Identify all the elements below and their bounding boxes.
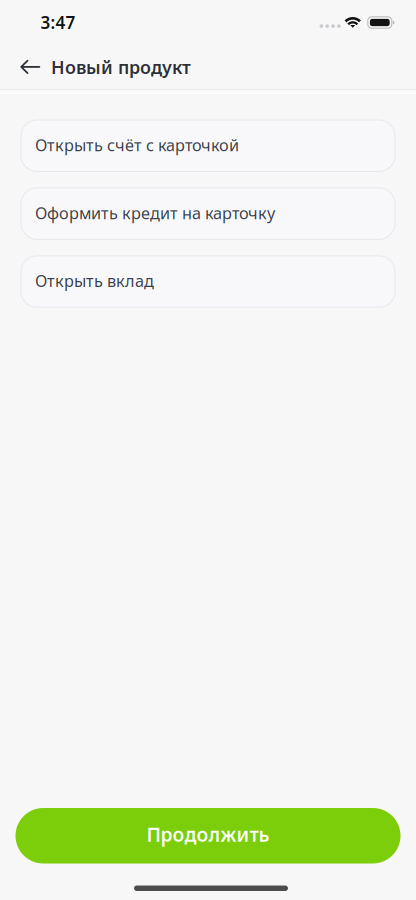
staticText: Новый продукт xyxy=(51,55,191,79)
button[interactable]: Back xyxy=(13,45,47,89)
button[interactable]: Открыть вклад xyxy=(21,256,395,307)
staticText: 3:47 xyxy=(40,11,75,34)
staticText: Открыть счёт с карточкой xyxy=(35,134,239,156)
staticText: Открыть вклад xyxy=(35,270,154,292)
button[interactable]: Оформить кредит на карточку xyxy=(21,188,395,239)
staticText: Оформить кредит на карточку xyxy=(35,202,275,224)
button[interactable]: Продолжить xyxy=(15,808,400,863)
staticText: Продолжить xyxy=(146,821,269,847)
button[interactable]: Открыть счёт с карточкой xyxy=(21,120,395,171)
